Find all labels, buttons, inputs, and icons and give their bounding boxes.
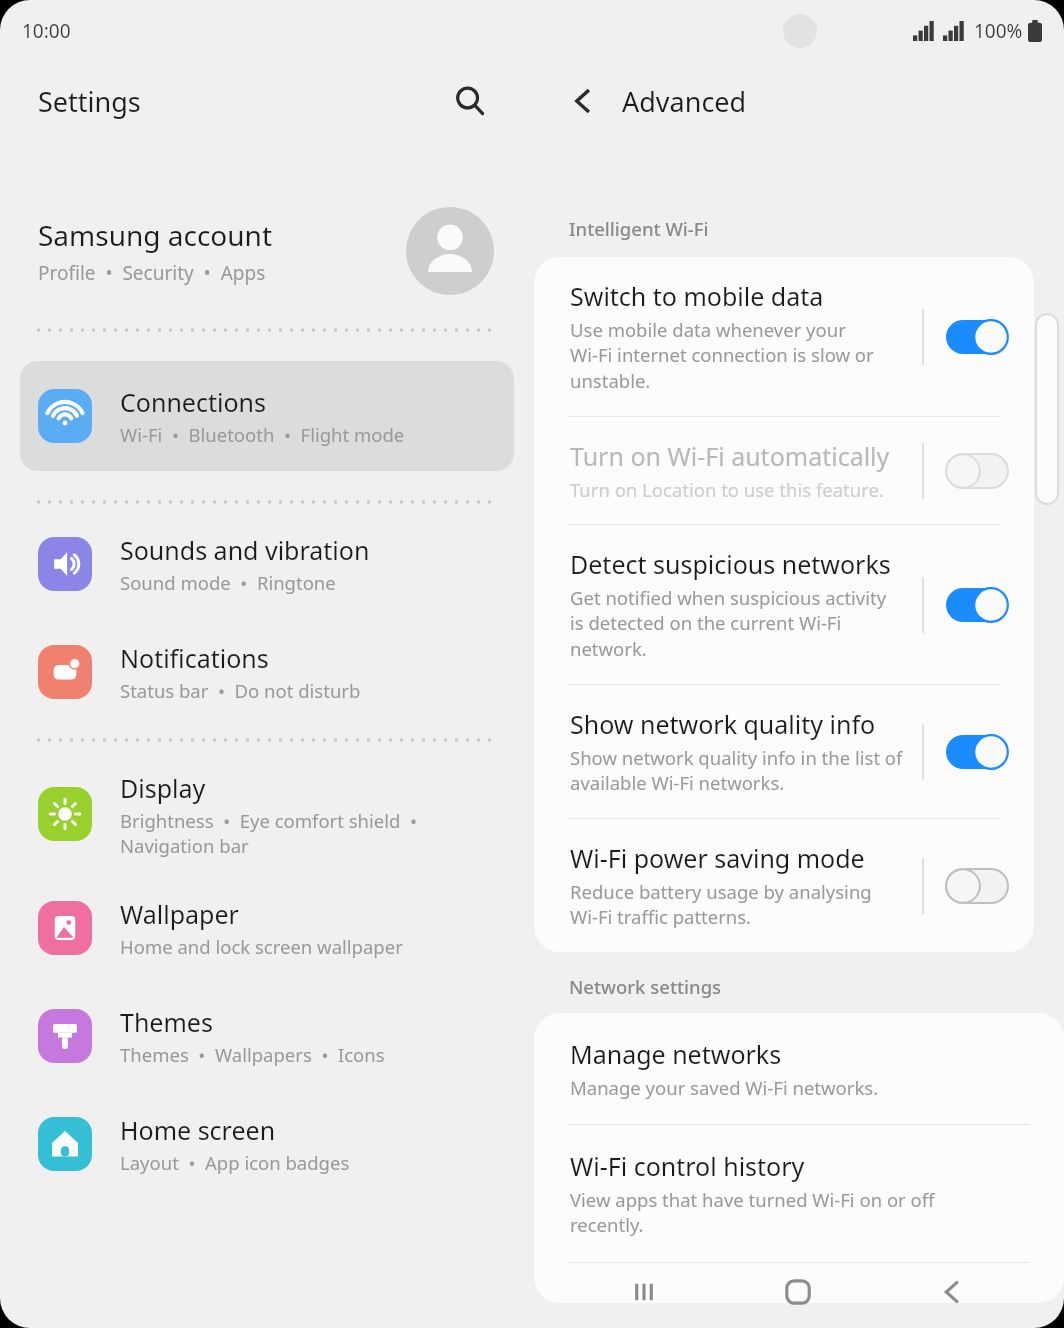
- button[interactable]: On: [946, 320, 1008, 354]
- staticText: Notifications: [120, 641, 269, 675]
- staticText: Profile • Security • Apps: [38, 260, 266, 286]
- staticText: Wallpaper: [120, 897, 239, 931]
- button[interactable]: Back: [556, 74, 610, 128]
- button[interactable]: Back: [910, 1261, 994, 1323]
- staticText: Status bar • Do not disturb: [120, 678, 361, 703]
- staticText: Wi-Fi power saving mode: [570, 841, 865, 875]
- staticText: Brightness • Eye comfort shield • Naviga…: [120, 808, 508, 858]
- staticText: Home and lock screen wallpaper: [120, 934, 403, 959]
- button[interactable]: Off: [946, 454, 1008, 488]
- button[interactable]: Home: [756, 1261, 840, 1323]
- staticText: Layout • App icon badges: [120, 1150, 350, 1175]
- staticText: Wi-Fi control history: [570, 1149, 805, 1183]
- button[interactable]: On: [946, 735, 1008, 769]
- button[interactable]: Show network quality info: [534, 685, 1034, 818]
- button[interactable]: Switch to mobile data: [534, 257, 1034, 416]
- button[interactable]: Wallpaper: [0, 888, 532, 968]
- button[interactable]: Themes: [0, 996, 532, 1076]
- staticText: View apps that have turned Wi-Fi on or o…: [570, 1187, 935, 1238]
- staticText: Show network quality info in the list of…: [570, 745, 903, 796]
- staticText: Advanced: [622, 83, 747, 120]
- staticText: Settings: [38, 83, 141, 120]
- staticText: Manage networks: [570, 1037, 782, 1071]
- staticText: Get notified when suspicious activity is…: [570, 585, 887, 662]
- staticText: Use mobile data whenever your Wi-Fi inte…: [570, 317, 874, 394]
- button[interactable]: Search: [442, 73, 498, 129]
- button[interactable]: Connections: [20, 361, 514, 471]
- staticText: Turn on Wi-Fi automatically: [570, 439, 890, 473]
- button[interactable]: Wi-Fi control history: [534, 1125, 1064, 1262]
- button[interactable]: Notifications: [0, 632, 532, 712]
- button[interactable]: On: [946, 588, 1008, 622]
- staticText: Network settings: [569, 974, 722, 999]
- button[interactable]: Samsung account: [0, 196, 532, 306]
- button[interactable]: Recent apps: [602, 1261, 686, 1323]
- staticText: Home screen: [120, 1113, 276, 1147]
- staticText: Themes • Wallpapers • Icons: [120, 1042, 385, 1067]
- staticText: Turn on Location to use this feature.: [570, 477, 884, 502]
- staticText: Intelligent Wi-Fi: [569, 216, 709, 241]
- staticText: 100%: [974, 18, 1023, 44]
- button[interactable]: Turn on Wi-Fi automatically: [534, 417, 1034, 524]
- button[interactable]: Wi-Fi power saving mode: [534, 819, 1034, 952]
- staticText: Sound mode • Ringtone: [120, 570, 336, 595]
- button[interactable]: Sounds and vibration: [0, 524, 532, 604]
- staticText: Manage your saved Wi-Fi networks.: [570, 1075, 879, 1100]
- staticText: Reduce battery usage by analysing Wi-Fi …: [570, 879, 872, 930]
- staticText: Themes: [120, 1005, 213, 1039]
- button[interactable]: Home screen: [0, 1104, 532, 1184]
- button[interactable]: Detect suspicious networks: [534, 525, 1034, 684]
- staticText: Show network quality info: [570, 707, 876, 741]
- button[interactable]: Display: [0, 764, 532, 864]
- button[interactable]: Manage networks: [534, 1013, 1064, 1124]
- staticText: Samsung account: [38, 216, 273, 254]
- staticText: Wi-Fi • Bluetooth • Flight mode: [120, 422, 405, 447]
- staticText: Display: [120, 771, 206, 805]
- staticText: 10:00: [22, 18, 71, 44]
- staticText: Sounds and vibration: [120, 533, 370, 567]
- button[interactable]: Off: [946, 869, 1008, 903]
- staticText: Switch to mobile data: [570, 279, 824, 313]
- staticText: Detect suspicious networks: [570, 547, 891, 581]
- staticText: Connections: [120, 385, 266, 419]
